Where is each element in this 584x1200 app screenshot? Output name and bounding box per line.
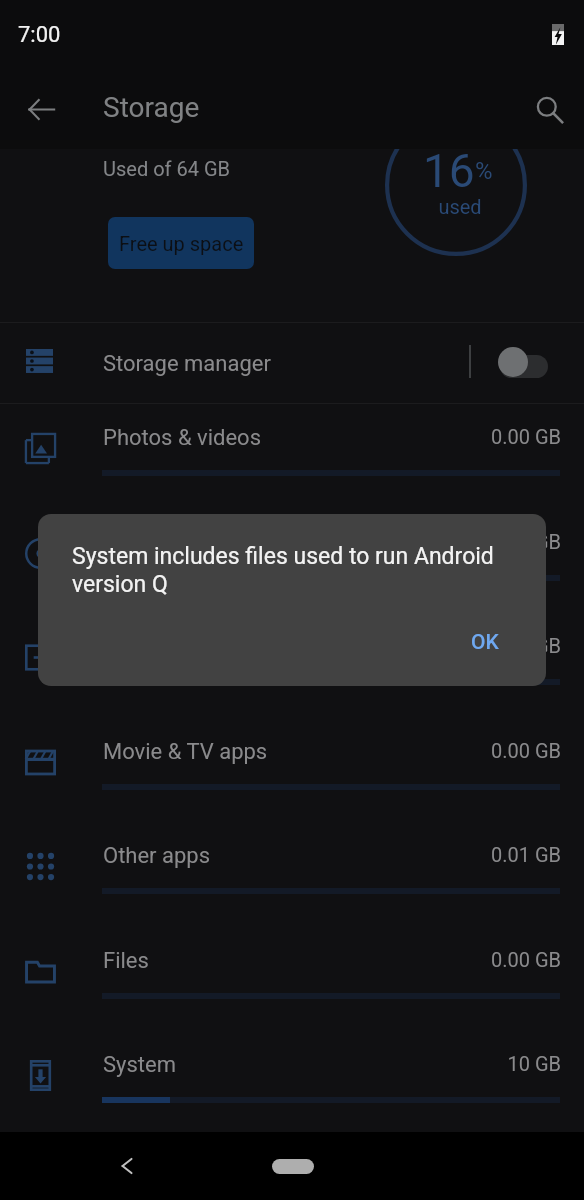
button[interactable]: Search — [523, 83, 575, 135]
button[interactable]: System — [0, 1030, 584, 1135]
button[interactable]: Storage manager — [0, 323, 584, 403]
staticText: Free up space — [119, 232, 244, 255]
button[interactable]: Music & audio — [0, 508, 584, 613]
staticText: 7:00 — [18, 22, 61, 48]
button[interactable]: Games — [0, 612, 584, 717]
staticText: 16 — [423, 149, 475, 192]
staticText: Music & audio — [103, 530, 242, 556]
staticText: 0.00 GB — [0, 530, 561, 553]
button[interactable]: Home — [272, 1159, 314, 1174]
staticText: Files — [103, 948, 149, 974]
button[interactable]: Photos & videos — [0, 403, 584, 508]
staticText: Storage — [103, 91, 200, 124]
staticText: Movie & TV apps — [103, 739, 268, 765]
button[interactable]: Files — [0, 926, 584, 1031]
staticText: 0.00 GB — [0, 634, 561, 657]
button[interactable]: Free up space — [108, 217, 254, 269]
button[interactable]: Back — [101, 1140, 153, 1192]
button[interactable]: Other apps — [0, 821, 584, 926]
staticText: Other apps — [103, 843, 211, 869]
button[interactable] — [490, 339, 556, 385]
button[interactable]: Navigate up — [15, 83, 67, 135]
staticText: OK — [471, 630, 499, 655]
staticText: 0.00 GB — [0, 739, 561, 762]
staticText: Used of 64 GB — [103, 157, 230, 180]
staticText: 0.00 GB — [0, 425, 561, 448]
staticText: used — [390, 195, 530, 218]
staticText: System includes files used to run Androi… — [72, 543, 500, 598]
staticText: 0.01 GB — [0, 843, 561, 866]
staticText: % — [475, 157, 493, 185]
staticText: Photos & videos — [103, 425, 262, 451]
staticText: System — [103, 1052, 176, 1078]
staticText: 0.00 GB — [0, 948, 561, 971]
staticText: 10 GB — [0, 1052, 561, 1075]
staticText: Storage manager — [103, 351, 271, 377]
button[interactable]: Movie & TV apps — [0, 717, 584, 822]
button[interactable]: OK — [452, 616, 518, 668]
